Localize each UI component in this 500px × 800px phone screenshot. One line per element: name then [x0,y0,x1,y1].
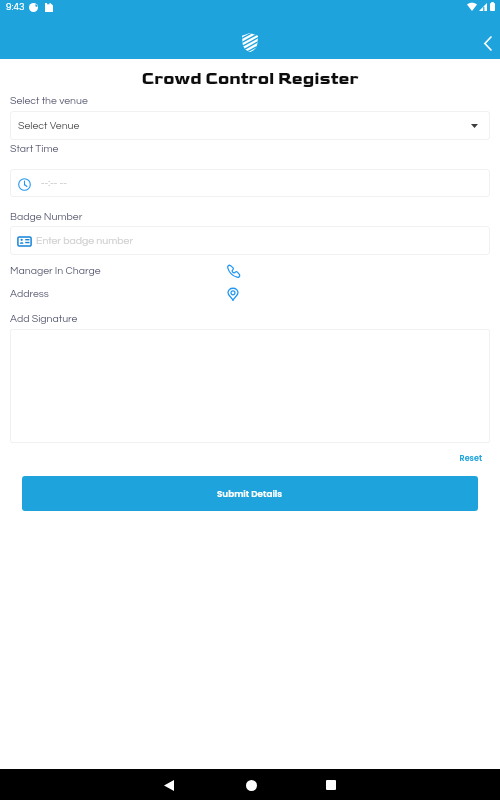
staticText: 9:43 [6,2,25,12]
button[interactable]: Select Venue [10,111,490,140]
staticText: Add Signature [10,313,78,324]
button[interactable]: Back [155,771,183,799]
staticText: Manager In Charge [10,265,101,276]
staticText: Submit Details [217,488,283,500]
staticText: Select the venue [10,95,88,106]
staticText: Address [10,288,49,299]
staticText: Select Venue [18,120,80,131]
staticText: Badge Number [10,211,83,222]
button[interactable]: --:-- -- [10,169,490,197]
staticText: Crowd Control Register [0,69,500,89]
staticText: Start Time [10,143,59,154]
button[interactable]: Manager In Charge [0,263,500,283]
button[interactable]: Home [237,771,265,799]
button[interactable]: Recents [317,771,345,799]
button[interactable]: Back [474,30,500,56]
button[interactable]: Address [0,286,500,306]
button[interactable]: Reset [0,453,482,464]
staticText: Enter badge number [36,235,134,246]
button[interactable]: Enter badge number [10,226,490,255]
staticText: --:-- -- [41,178,67,188]
button[interactable]: Submit Details [22,476,478,511]
